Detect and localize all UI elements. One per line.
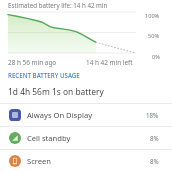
staticText: 1d 4h 56m 1s on battery bbox=[8, 86, 104, 97]
staticText: 0% bbox=[152, 53, 160, 61]
staticText: 14 h 42 min left bbox=[86, 58, 133, 67]
button[interactable]: Screen bbox=[0, 150, 172, 172]
staticText: RECENT BATTERY USAGE bbox=[8, 71, 80, 79]
staticText: 100% bbox=[145, 12, 160, 20]
staticText: Screen bbox=[27, 156, 150, 166]
staticText: 28 h 56 min ago bbox=[8, 58, 57, 67]
button[interactable]: Always On Display bbox=[0, 104, 172, 127]
staticText: 50% bbox=[148, 32, 160, 40]
staticText: Always On Display bbox=[27, 110, 146, 120]
staticText: 18% bbox=[146, 111, 159, 119]
staticText: 8% bbox=[150, 134, 159, 142]
staticText: 8% bbox=[150, 157, 159, 165]
staticText: Estimated battery life: 14 h 42 min bbox=[8, 1, 108, 9]
staticText: Cell standby bbox=[27, 133, 150, 143]
button[interactable]: Cell standby bbox=[0, 127, 172, 150]
